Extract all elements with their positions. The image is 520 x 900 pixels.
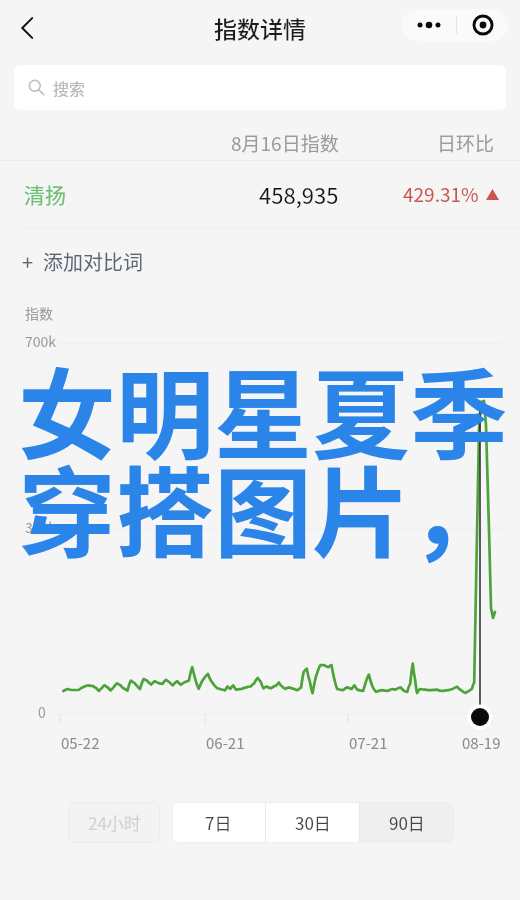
- staticText: 0: [38, 702, 46, 722]
- button[interactable]: 7日: [172, 802, 265, 843]
- staticText: 350k: [25, 517, 57, 537]
- staticText: 05-22: [61, 732, 100, 754]
- staticText: 搜索: [53, 76, 86, 99]
- staticText: 458,935: [259, 178, 339, 210]
- staticText: 清扬: [24, 179, 66, 209]
- staticText: 07-21: [349, 732, 388, 754]
- staticText: 24小时: [88, 810, 141, 835]
- button[interactable]: 30日: [266, 802, 359, 843]
- button[interactable]: 90日: [360, 802, 453, 843]
- button[interactable]: Close: [457, 9, 508, 41]
- staticText: 429.31%: [403, 180, 479, 208]
- staticText: 女明星夏季: [18, 337, 509, 479]
- staticText: 90日: [389, 810, 425, 835]
- staticText: 指数: [25, 303, 53, 323]
- staticText: 添加对比词: [43, 247, 143, 276]
- button[interactable]: 搜索: [14, 65, 506, 110]
- button[interactable]: Back: [4, 4, 52, 52]
- staticText: +: [22, 247, 34, 276]
- staticText: 指数详情: [214, 11, 306, 44]
- staticText: 8月16日指数: [231, 129, 339, 157]
- button[interactable]: 24小时: [68, 802, 160, 843]
- staticText: 30日: [295, 810, 331, 835]
- button[interactable]: 清扬: [0, 161, 520, 227]
- staticText: 08-19: [462, 732, 501, 754]
- staticText: 穿搭图片，: [18, 435, 509, 577]
- button[interactable]: +: [0, 228, 520, 294]
- staticText: 日环比: [437, 129, 495, 157]
- staticText: 700k: [25, 331, 57, 351]
- staticText: 06-21: [206, 732, 245, 754]
- staticText: 7日: [205, 810, 232, 835]
- button[interactable]: More options: [402, 9, 456, 41]
